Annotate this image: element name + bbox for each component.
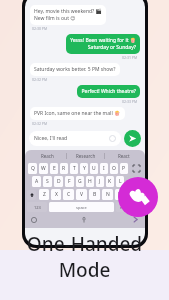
- button[interactable]: Voice input: [79, 215, 89, 225]
- button[interactable]: I: [100, 163, 108, 174]
- staticText: Q: [31, 165, 35, 172]
- staticText: N: [106, 191, 110, 198]
- button[interactable]: Nicee, I'll read: [29, 131, 121, 146]
- staticText: H: [88, 178, 92, 185]
- button[interactable]: Reach: [28, 150, 66, 161]
- button[interactable]: Research: [67, 150, 104, 161]
- button[interactable]: R: [60, 163, 68, 174]
- staticText: G: [78, 178, 82, 185]
- button[interactable]: X: [51, 189, 61, 200]
- staticText: E: [53, 165, 56, 172]
- button[interactable]: Saturday works better. 5 PM show?: [30, 63, 120, 76]
- staticText: C: [67, 191, 71, 198]
- staticText: Yesss! Been waiting for it 🍿: [70, 37, 136, 44]
- staticText: 02:30 PM: [32, 26, 48, 31]
- staticText: One-Handed Mode: [0, 231, 169, 283]
- staticText: V: [80, 191, 84, 198]
- button[interactable]: N: [102, 189, 113, 200]
- button[interactable]: PVR Icon, same one near the mall 🍿: [30, 107, 125, 120]
- button[interactable]: space: [49, 202, 114, 212]
- staticText: Saturday or Sunday?: [87, 44, 136, 51]
- staticText: U: [92, 165, 96, 172]
- button[interactable]: A: [32, 176, 41, 187]
- button[interactable]: T: [70, 163, 78, 174]
- button[interactable]: W: [39, 163, 48, 174]
- staticText: X: [55, 191, 58, 198]
- staticText: Nicee, I'll read: [34, 135, 109, 142]
- staticText: M: [118, 191, 123, 198]
- button[interactable]: Next: [130, 214, 141, 225]
- button[interactable]: Perfect! Which theatre?: [77, 85, 140, 98]
- staticText: PVR Icon, same one near the mall 🍿: [34, 110, 121, 117]
- button[interactable]: M: [115, 189, 126, 200]
- staticText: Saturday works better. 5 PM show?: [34, 66, 116, 73]
- staticText: New film is out 😊: [34, 15, 76, 22]
- staticText: F: [68, 178, 71, 185]
- button[interactable]: H: [86, 176, 94, 187]
- staticText: 02:31 PM: [122, 55, 138, 60]
- staticText: React: [118, 153, 130, 159]
- button[interactable]: Yesss! Been waiting for it 🍿: [66, 34, 140, 54]
- staticText: 123: [34, 205, 41, 210]
- staticText: B: [93, 191, 97, 198]
- staticText: J: [99, 178, 101, 185]
- button[interactable]: Z: [39, 189, 49, 200]
- staticText: I: [103, 165, 105, 172]
- button[interactable]: S: [43, 176, 52, 187]
- staticText: Y: [83, 165, 86, 172]
- staticText: T: [73, 165, 76, 172]
- staticText: 02:32 PM: [32, 121, 48, 126]
- staticText: Reach: [41, 153, 54, 159]
- button[interactable]: G: [76, 176, 84, 187]
- button[interactable]: D: [54, 176, 63, 187]
- button[interactable]: U: [90, 163, 98, 174]
- button[interactable]: One-handed mode gesture: [118, 177, 158, 217]
- staticText: Hey, movie this weekend? 🎬: [34, 8, 102, 15]
- staticText: D: [57, 178, 61, 185]
- staticText: Research: [76, 153, 96, 159]
- button[interactable]: E: [50, 163, 58, 174]
- button[interactable]: C: [63, 189, 74, 200]
- button[interactable]: B: [89, 189, 100, 200]
- staticText: S: [46, 178, 49, 185]
- staticText: R: [62, 165, 66, 172]
- button[interactable]: Backspace: [129, 190, 138, 200]
- button[interactable]: F: [65, 176, 74, 187]
- button[interactable]: Emoji: [29, 215, 39, 225]
- button[interactable]: P: [120, 163, 128, 174]
- button[interactable]: J: [96, 176, 104, 187]
- staticText: 02:33 PM: [122, 99, 138, 104]
- staticText: O: [112, 165, 116, 172]
- staticText: Z: [43, 191, 46, 198]
- staticText: L: [119, 178, 122, 185]
- button[interactable]: O: [110, 163, 118, 174]
- button[interactable]: V: [76, 189, 87, 200]
- staticText: return: [120, 205, 132, 210]
- button[interactable]: 123: [27, 202, 47, 212]
- button[interactable]: React: [105, 150, 142, 161]
- button[interactable]: Shift: [27, 190, 36, 200]
- button[interactable]: L: [116, 176, 124, 187]
- button[interactable]: return: [116, 202, 136, 212]
- staticText: 02:32 PM: [32, 77, 48, 82]
- staticText: W: [41, 165, 46, 172]
- staticText: A: [35, 178, 39, 185]
- button[interactable]: K: [106, 176, 114, 187]
- button[interactable]: Hey, movie this weekend? 🎬: [30, 5, 106, 25]
- staticText: P: [122, 165, 126, 172]
- button[interactable]: Send: [124, 130, 141, 147]
- button[interactable]: Q: [28, 163, 37, 174]
- button[interactable]: Expand keyboard: [129, 162, 143, 174]
- staticText: K: [108, 178, 112, 185]
- staticText: Perfect! Which theatre?: [81, 88, 136, 95]
- staticText: space: [76, 205, 87, 210]
- button[interactable]: Y: [80, 163, 88, 174]
